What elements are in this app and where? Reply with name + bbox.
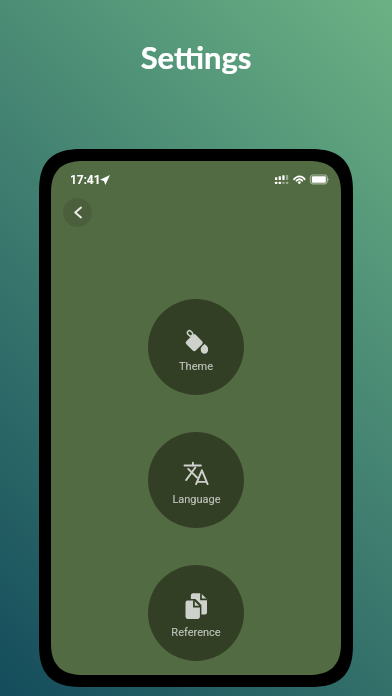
- staticText: 17:41: [70, 173, 101, 187]
- staticText: Language: [172, 493, 221, 506]
- staticText: Theme: [179, 360, 213, 373]
- button[interactable]: Back: [63, 198, 92, 227]
- button[interactable]: Theme: [148, 299, 244, 395]
- staticText: Settings: [0, 38, 392, 75]
- button[interactable]: Reference: [148, 565, 244, 661]
- button[interactable]: Language: [148, 432, 244, 528]
- staticText: Reference: [171, 626, 221, 639]
